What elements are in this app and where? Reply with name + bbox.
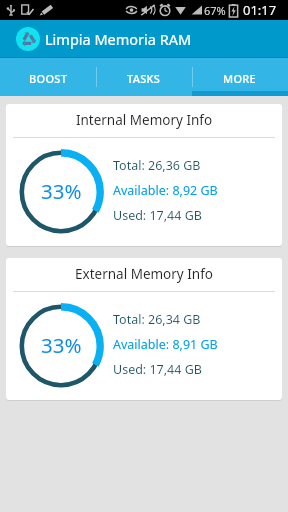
staticText: Limpia Memoria RAM [45,29,192,49]
staticText: Available: 8,91 GB [113,336,218,353]
staticText: Total: 26,34 GB [113,311,201,328]
button[interactable]: BOOST [0,58,96,96]
button[interactable]: External Memory Info [6,258,282,400]
button[interactable]: TASKS [96,58,192,96]
staticText: 01:17 [243,1,277,19]
button[interactable]: MORE [192,58,288,96]
staticText: 33% [41,177,82,205]
staticText: BOOST [29,71,68,86]
staticText: Total: 26,36 GB [113,157,201,174]
staticText: Used: 17,44 GB [113,207,202,224]
staticText: 67% [204,3,226,18]
staticText: External Memory Info [6,265,282,283]
staticText: TASKS [127,71,161,86]
staticText: 33% [41,331,82,359]
staticText: MORE [223,71,257,86]
staticText: Internal Memory Info [6,111,282,129]
button[interactable]: Internal Memory Info [6,104,282,246]
staticText: Available: 8,92 GB [113,182,218,199]
staticText: Used: 17,44 GB [113,361,202,378]
